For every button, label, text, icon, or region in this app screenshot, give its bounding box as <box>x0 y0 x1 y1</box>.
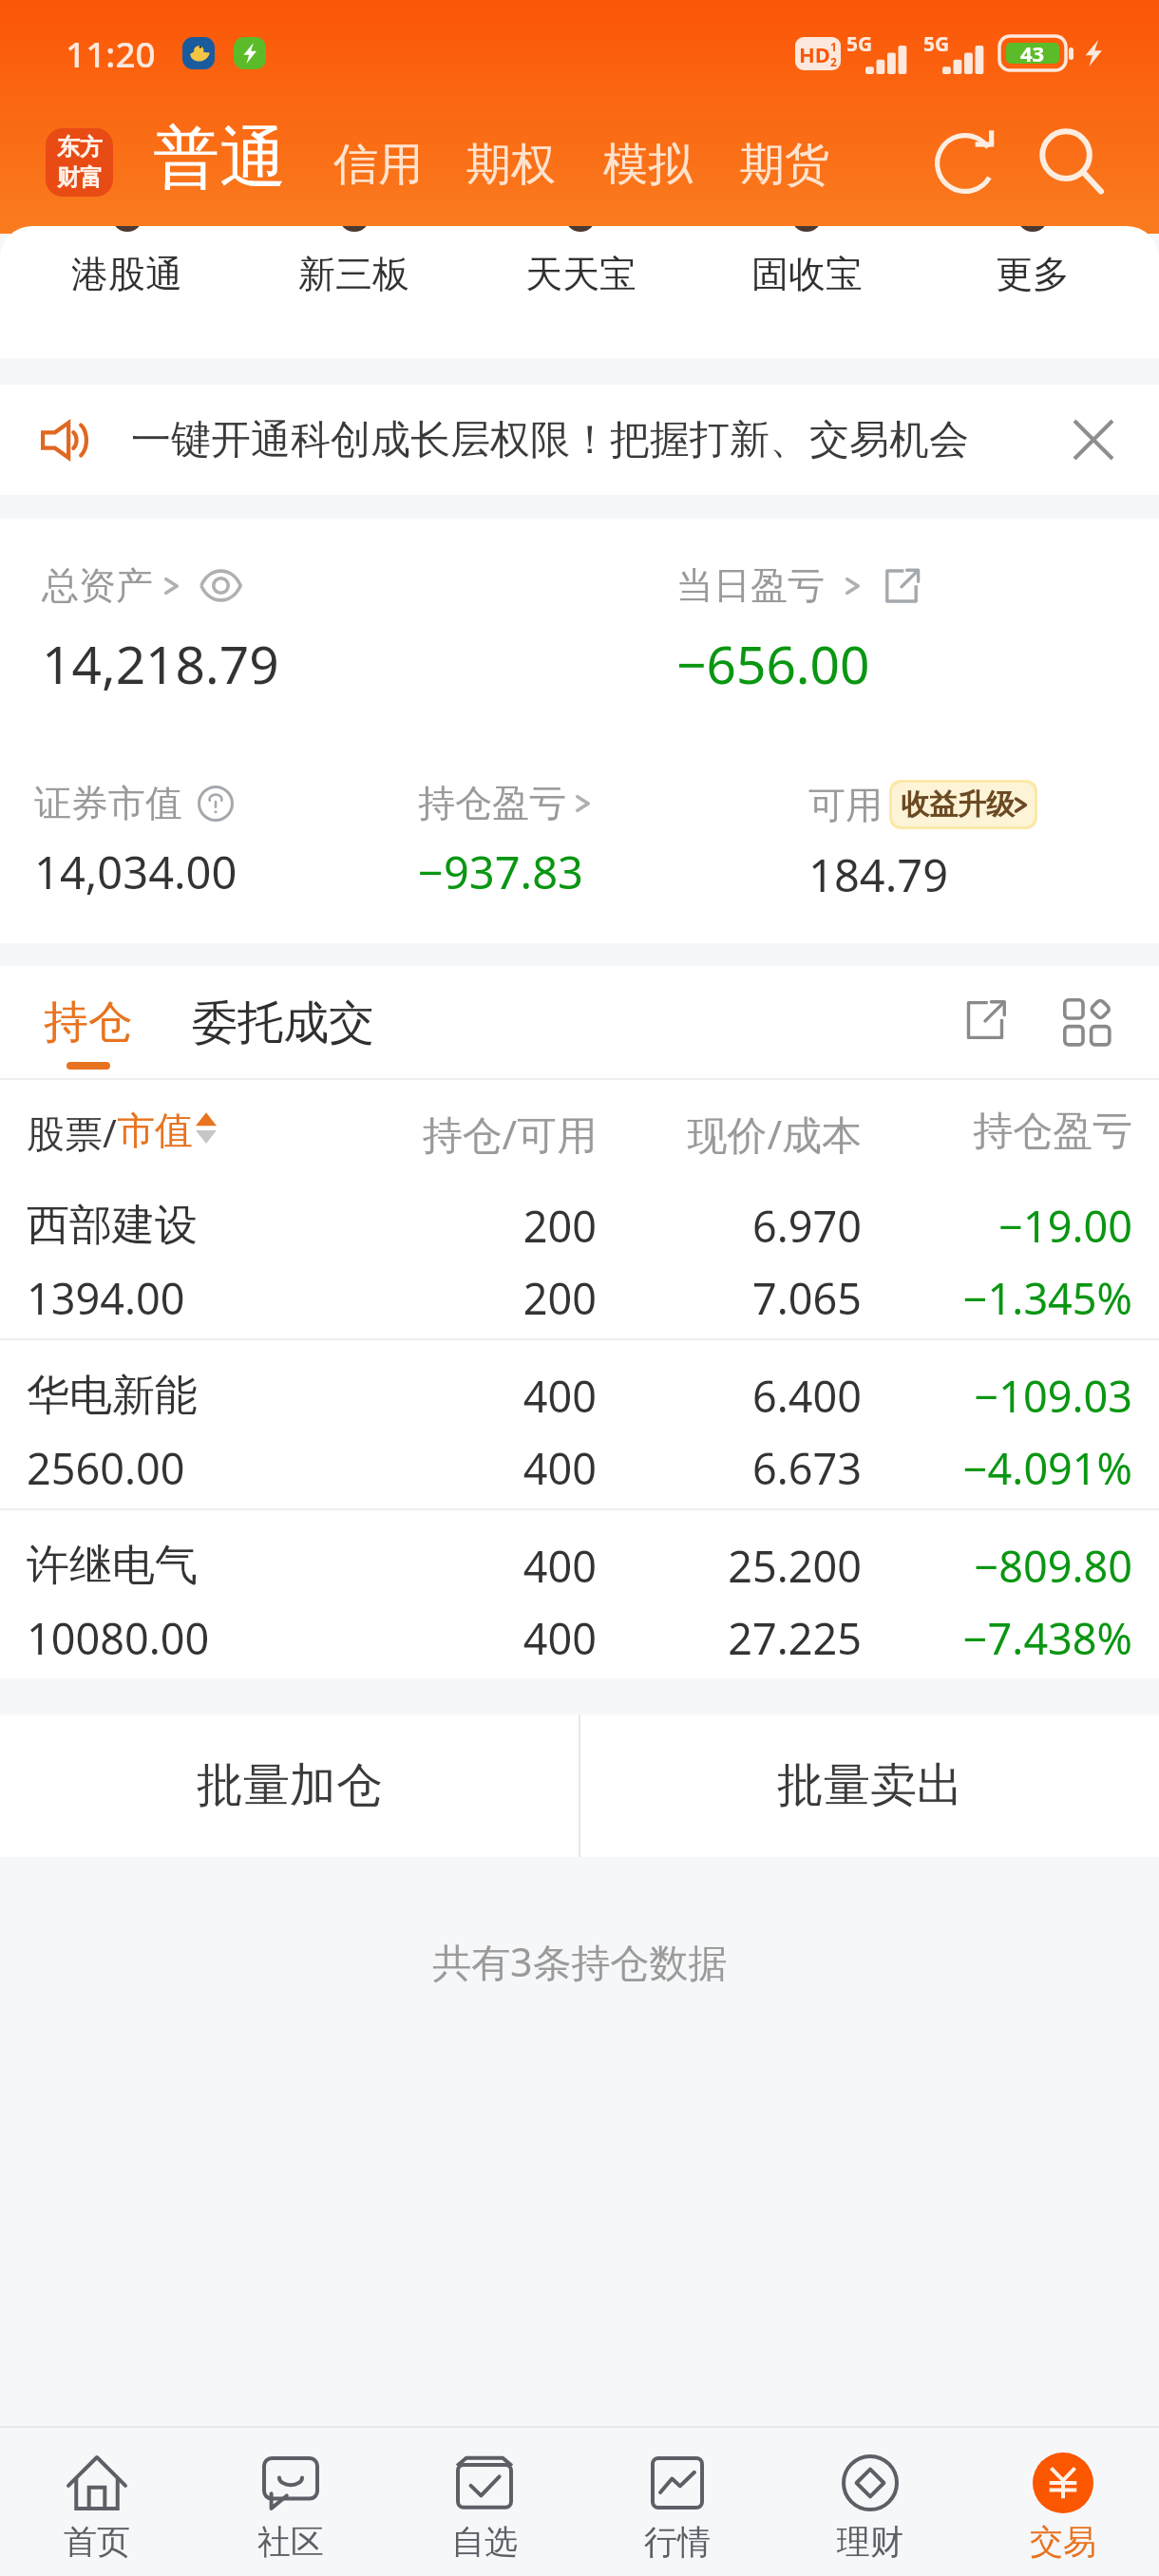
staticText: 持仓盈亏 <box>883 1107 1132 1157</box>
staticText: −7.438% <box>883 1609 1132 1667</box>
staticText: 普通 <box>153 117 286 200</box>
staticText: 5G <box>846 30 873 58</box>
button[interactable]: Search <box>1030 122 1113 205</box>
button[interactable]: 天天宝 <box>467 226 693 358</box>
staticText: 14,218.79 <box>42 628 279 699</box>
button[interactable]: Close <box>1051 397 1136 483</box>
staticText: 25.200 <box>617 1537 862 1595</box>
staticText: −656.00 <box>676 628 870 699</box>
staticText: 西部建设 <box>27 1199 340 1253</box>
staticText: −19.00 <box>883 1197 1132 1255</box>
staticText: −4.091% <box>883 1439 1132 1497</box>
staticText: 理财 <box>837 2521 903 2563</box>
staticText: 1 <box>830 39 837 54</box>
staticText: 持仓/可用 <box>340 1107 597 1161</box>
staticText: 14,034.00 <box>34 842 237 902</box>
staticText: 更多 <box>996 251 1070 297</box>
staticText: 当日盈亏 <box>676 562 825 609</box>
button[interactable]: 更多 <box>920 226 1146 358</box>
staticText: 港股通 <box>71 251 182 297</box>
button[interactable]: 期货 <box>740 137 829 193</box>
button[interactable]: 社区 <box>194 2428 388 2576</box>
button[interactable]: 一键开通科创成长层权限！把握打新、交易机会 <box>0 385 1159 495</box>
button[interactable]: 行情 <box>580 2428 773 2576</box>
button[interactable]: 期权 <box>466 137 556 193</box>
button[interactable]: 西部建设 <box>0 1170 1159 1338</box>
staticText: 5G <box>923 30 950 58</box>
staticText: 信用 <box>333 137 423 193</box>
button[interactable]: Open in new <box>948 983 1022 1057</box>
staticText: 184.79 <box>808 844 949 905</box>
staticText: 6.673 <box>617 1439 862 1497</box>
staticText: 6.400 <box>617 1367 862 1425</box>
staticText: HD <box>799 40 830 68</box>
button[interactable]: 批量加仓 <box>0 1714 579 1857</box>
button[interactable]: 模拟 <box>603 137 693 193</box>
staticText: 持仓盈亏 <box>418 780 566 826</box>
staticText: 新三板 <box>298 251 409 297</box>
staticText: 自选 <box>451 2521 518 2563</box>
staticText: 43 <box>1020 39 1045 67</box>
button[interactable]: 委托成交 <box>192 966 374 1023</box>
staticText: 委托成交 <box>192 994 374 1051</box>
staticText: 期货 <box>740 137 829 193</box>
staticText: 总资产 <box>42 562 153 609</box>
staticText: 400 <box>340 1439 597 1497</box>
button[interactable]: 理财 <box>773 2428 966 2576</box>
staticText: −1.345% <box>883 1269 1132 1327</box>
button[interactable]: Grid view <box>1049 983 1123 1057</box>
staticText: 200 <box>340 1269 597 1327</box>
staticText: −809.80 <box>883 1537 1132 1595</box>
button[interactable]: Refresh <box>923 122 1007 205</box>
staticText: 27.225 <box>617 1609 862 1667</box>
staticText: 1394.00 <box>27 1269 340 1327</box>
staticText: 期权 <box>466 137 556 193</box>
button[interactable]: 华电新能 <box>0 1340 1159 1508</box>
button[interactable]: 批量卖出 <box>580 1714 1159 1857</box>
staticText: 天天宝 <box>525 251 636 297</box>
staticText: 可用 <box>808 782 883 828</box>
staticText: 共有3条持仓数据 <box>432 1935 728 1988</box>
button[interactable]: 持仓盈亏 <box>418 780 590 826</box>
button[interactable]: 持仓 <box>44 966 133 1070</box>
staticText: 200 <box>340 1197 597 1255</box>
staticText: 收益升级 <box>901 786 1015 823</box>
staticText: 2560.00 <box>27 1439 340 1497</box>
staticText: 400 <box>340 1537 597 1595</box>
button[interactable]: 信用 <box>333 137 423 193</box>
staticText: 证券市值 <box>34 780 182 826</box>
staticText: −109.03 <box>883 1367 1132 1425</box>
staticText: 400 <box>340 1367 597 1425</box>
button[interactable]: 东方 <box>46 128 113 197</box>
staticText: 一键开通科创成长层权限！把握打新、交易机会 <box>131 415 969 465</box>
staticText: 现价/成本 <box>617 1107 862 1161</box>
staticText: 2 <box>830 54 837 69</box>
staticText: 交易 <box>1030 2521 1096 2563</box>
staticText: 11:20 <box>66 29 156 77</box>
staticText: 批量卖出 <box>777 1756 963 1815</box>
button[interactable]: 收益升级 <box>892 783 1035 826</box>
staticText: −937.83 <box>418 842 583 902</box>
button[interactable]: 当日盈亏 <box>676 562 921 609</box>
staticText: 持仓 <box>44 994 133 1051</box>
staticText: 模拟 <box>603 137 693 193</box>
button[interactable]: 自选 <box>388 2428 580 2576</box>
staticText: 10080.00 <box>27 1609 340 1667</box>
staticText: 市值 <box>117 1107 193 1154</box>
button[interactable]: 许继电气 <box>0 1510 1159 1678</box>
button[interactable]: 首页 <box>0 2428 194 2576</box>
button[interactable]: 港股通 <box>13 226 240 358</box>
button[interactable]: 普通 <box>153 117 286 200</box>
staticText: 社区 <box>257 2521 324 2563</box>
staticText: 华电新能 <box>27 1369 340 1423</box>
staticText: 股票/ <box>27 1107 117 1159</box>
button[interactable]: 交易 <box>966 2428 1159 2576</box>
button[interactable]: 总资产 <box>42 562 242 609</box>
staticText: 固收宝 <box>751 251 863 297</box>
staticText: 东方 <box>57 133 103 161</box>
button[interactable]: 固收宝 <box>693 226 920 358</box>
button[interactable]: 新三板 <box>240 226 467 358</box>
button[interactable]: 证券市值 <box>34 780 234 826</box>
staticText: 行情 <box>644 2521 711 2563</box>
staticText: 财富 <box>57 163 103 192</box>
